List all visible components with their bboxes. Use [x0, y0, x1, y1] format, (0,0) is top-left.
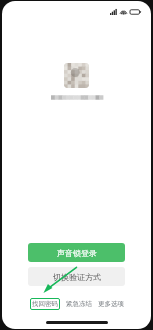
staticText: 声音锁登录 [57, 248, 97, 258]
button[interactable]: 找回密码 [32, 300, 58, 308]
staticText: 切换验证方式 [53, 272, 101, 282]
button[interactable]: 紧急冻结 [66, 300, 92, 308]
button[interactable]: 声音锁登录 [28, 243, 125, 262]
button[interactable]: 切换验证方式 [28, 267, 125, 286]
staticText: 紧急冻结 [66, 300, 92, 308]
staticText: 更多选项 [98, 300, 124, 308]
staticText: 找回密码 [32, 300, 58, 308]
button[interactable]: 更多选项 [98, 300, 124, 308]
